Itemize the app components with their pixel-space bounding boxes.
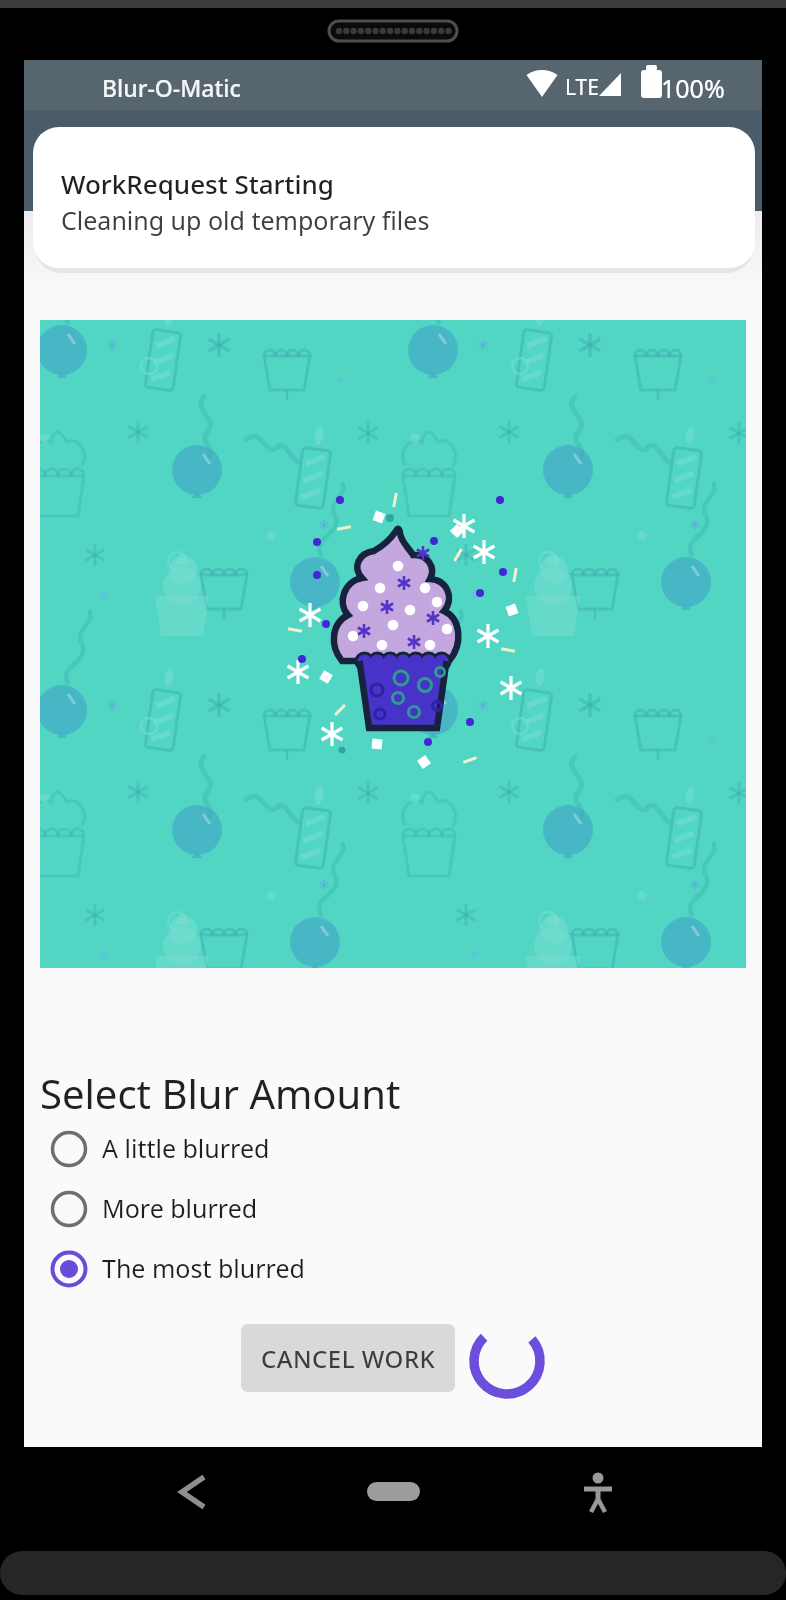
staticText: A little blurred: [102, 1131, 270, 1165]
button[interactable]: WorkRequest Starting: [33, 127, 755, 268]
button[interactable]: [160, 1462, 220, 1522]
button[interactable]: More blurred: [44, 1184, 374, 1232]
button[interactable]: [568, 1462, 628, 1522]
staticText: Select Blur Amount: [40, 1066, 401, 1120]
staticText: The most blurred: [102, 1251, 305, 1285]
staticText: 100%: [661, 71, 725, 105]
button[interactable]: The most blurred: [44, 1244, 374, 1292]
staticText: CANCEL WORK: [261, 1342, 436, 1375]
staticText: Blur-O-Matic: [102, 72, 241, 103]
staticText: Cleaning up old temporary files: [61, 203, 430, 237]
button[interactable]: A little blurred: [44, 1124, 374, 1172]
button[interactable]: [367, 1482, 420, 1501]
staticText: More blurred: [102, 1191, 258, 1225]
staticText: LTE: [565, 73, 599, 102]
button[interactable]: CANCEL WORK: [241, 1324, 455, 1392]
staticText: WorkRequest Starting: [61, 166, 334, 201]
